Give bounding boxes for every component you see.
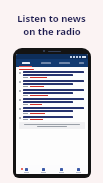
button[interactable]: Tab 4	[74, 59, 88, 66]
button[interactable]: Tab 1	[16, 59, 36, 66]
button[interactable]: Tab 3	[55, 59, 74, 66]
button[interactable]	[19, 116, 85, 120]
button[interactable]: Banner	[19, 122, 85, 129]
button[interactable]: Home	[19, 167, 33, 174]
button[interactable]: Live	[54, 167, 68, 174]
button[interactable]	[19, 80, 85, 87]
staticText: on the radio	[23, 25, 81, 38]
button[interactable]: Tab 2	[36, 59, 55, 66]
button[interactable]	[19, 107, 85, 114]
staticText: Listen to news	[17, 12, 86, 25]
button[interactable]: Sections	[36, 167, 50, 174]
button[interactable]	[19, 89, 85, 96]
button[interactable]: More	[71, 167, 85, 174]
button[interactable]	[19, 69, 85, 78]
button[interactable]	[19, 98, 85, 105]
